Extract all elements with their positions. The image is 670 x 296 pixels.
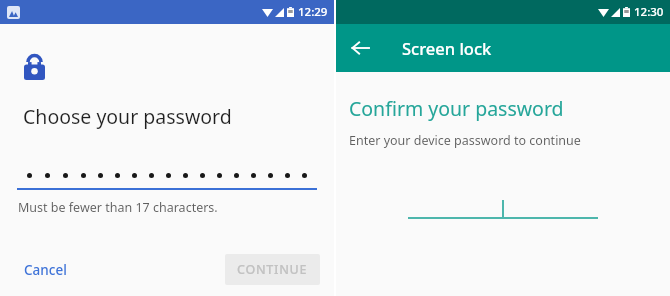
staticText: 12:30: [634, 4, 664, 20]
staticText: Confirm your password: [349, 95, 564, 122]
staticText: Cancel: [24, 261, 67, 279]
staticText: Enter your device password to continue: [349, 132, 581, 149]
button[interactable]: Back: [336, 24, 384, 72]
staticText: Must be fewer than 17 characters.: [18, 199, 218, 216]
button[interactable]: CONTINUE: [225, 254, 320, 285]
staticText: Screen lock: [402, 37, 492, 59]
button[interactable]: Cancel: [14, 255, 77, 285]
staticText: 12:29: [298, 4, 328, 20]
staticText: Choose your password: [23, 103, 232, 130]
staticText: CONTINUE: [237, 261, 308, 278]
